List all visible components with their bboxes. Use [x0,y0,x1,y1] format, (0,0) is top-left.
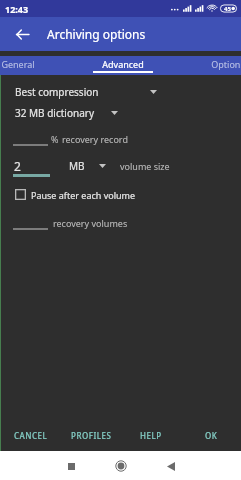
staticText: CANCEL [14,430,48,441]
button[interactable]: General [0,56,70,75]
staticText: Advanced [102,58,144,70]
button[interactable]: Pause after each volume [15,186,136,203]
button[interactable]: HELP [121,422,181,448]
staticText: 2 [14,158,21,174]
button[interactable]: PROFILES [61,422,121,448]
button[interactable]: Best compression [0,84,241,100]
staticText: MB [69,159,85,173]
staticText: volume size [120,160,170,172]
staticText: 12:43 [5,3,29,15]
staticText: 45 [224,5,231,13]
staticText: HELP [140,430,162,441]
staticText: Pause after each volume [31,189,136,201]
staticText: General [1,58,35,70]
button[interactable]: Options [175,56,241,75]
button[interactable]: Recent apps [59,454,83,478]
staticText: recovery record [62,133,128,145]
button[interactable]: OK [181,422,241,448]
staticText: 32 MB dictionary [15,106,94,120]
button[interactable]: Advanced [70,56,175,75]
staticText: % [51,133,59,145]
staticText: Archiving options [47,26,146,42]
staticText: Options [211,58,241,70]
staticText: Best compression [15,85,99,99]
button[interactable]: CANCEL [0,422,61,448]
button[interactable]: 32 MB dictionary [0,105,241,121]
staticText: recovery volumes [53,217,128,229]
button[interactable]: Home [109,454,133,478]
staticText: PROFILES [71,430,112,441]
staticText: OK [205,430,218,441]
button[interactable]: Back [159,454,183,478]
button[interactable]: Back [9,21,35,47]
